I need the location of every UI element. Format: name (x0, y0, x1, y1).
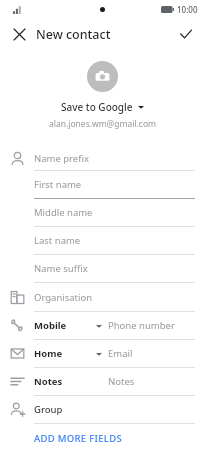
staticText: Name prefix (34, 152, 89, 165)
button[interactable]: Name suffix (0, 255, 205, 283)
button[interactable]: Notes (0, 368, 205, 396)
staticText: ADD MORE FIELDS (34, 432, 122, 445)
button[interactable]: Home (0, 340, 205, 368)
staticText: Save to Google (61, 100, 133, 114)
staticText: Group (34, 403, 63, 416)
button[interactable]: First name (0, 171, 205, 199)
staticText: Organisation (34, 291, 93, 304)
staticText: Email (108, 347, 133, 360)
button[interactable]: Name prefix (0, 146, 205, 171)
button[interactable]: Save contact (175, 23, 197, 45)
staticText: First name (34, 178, 82, 191)
button[interactable]: Middle name (0, 199, 205, 227)
button[interactable]: Mobile (0, 312, 205, 340)
staticText: alan.jones.wm@gmail.com (49, 118, 157, 130)
staticText: New contact (36, 26, 111, 43)
button[interactable]: Group (0, 396, 205, 424)
staticText: Home (34, 347, 63, 360)
staticText: Name suffix (34, 262, 88, 275)
button[interactable]: Add photo (87, 61, 118, 92)
staticText: Notes (34, 375, 63, 388)
staticText: Last name (34, 234, 81, 247)
staticText: Phone number (108, 319, 175, 332)
button[interactable]: Close (8, 23, 30, 45)
button[interactable]: ADD MORE FIELDS (0, 424, 205, 452)
staticText: Notes (108, 375, 135, 388)
staticText: Middle name (34, 206, 93, 219)
staticText: Mobile (34, 319, 67, 332)
button[interactable]: Save to Google (57, 99, 148, 115)
staticText: 10:00 (177, 4, 198, 15)
button[interactable]: Organisation (0, 283, 205, 312)
button[interactable]: Last name (0, 227, 205, 255)
